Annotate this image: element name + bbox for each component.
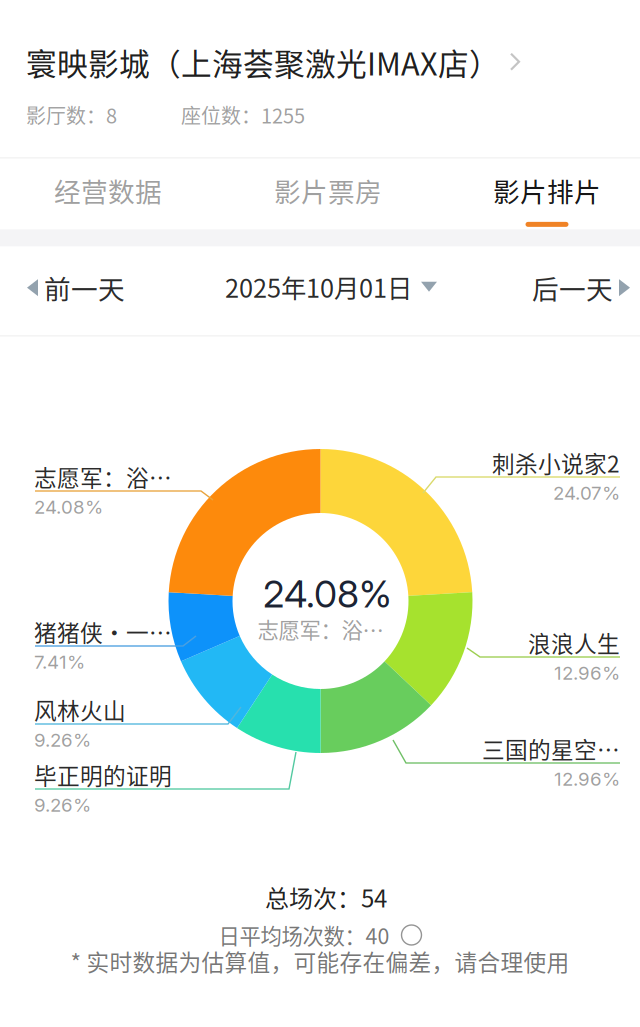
- staticText: 经营数据: [54, 171, 162, 210]
- button[interactable]: 前一天: [13, 246, 139, 329]
- staticText: 2025年10月01日: [225, 268, 412, 305]
- staticText: 志愿军：浴…: [257, 614, 383, 644]
- staticText: 12.96%: [554, 768, 620, 790]
- staticText: 9.26%: [34, 794, 91, 816]
- staticText: 毕正明的证明: [34, 758, 172, 791]
- staticText: 猪猪侠·一…: [34, 615, 172, 648]
- button[interactable]: 影片排片: [467, 159, 627, 239]
- staticText: 24.08%: [34, 496, 103, 518]
- staticText: 寰映影城（上海荟聚激光IMAX店）: [26, 40, 500, 84]
- staticText: 9.26%: [34, 729, 91, 751]
- button[interactable]: 影片票房: [248, 159, 408, 239]
- staticText: 志愿军：浴…: [34, 460, 172, 493]
- staticText: 风林火山: [34, 693, 126, 726]
- staticText: 刺杀小说家2: [492, 446, 620, 479]
- staticText: 三国的星空…: [482, 732, 620, 765]
- staticText: 24.07%: [553, 482, 620, 504]
- staticText: 座位数：1255: [181, 100, 305, 129]
- staticText: 前一天: [44, 268, 125, 307]
- button[interactable]: 2025年10月01日: [211, 246, 451, 327]
- staticText: 影厅数：8: [26, 100, 117, 129]
- button[interactable]: 经营数据: [28, 159, 188, 239]
- staticText: 总场次：54: [265, 880, 387, 914]
- button[interactable]: 寰映影城（上海荟聚激光IMAX店）: [0, 0, 521, 84]
- staticText: * 实时数据为估算值，可能存在偏差，请合理使用: [70, 945, 569, 977]
- staticText: 浪浪人生: [528, 626, 620, 659]
- staticText: 后一天: [532, 268, 613, 307]
- button[interactable]: 后一天: [518, 246, 640, 329]
- staticText: 24.08%: [263, 571, 392, 617]
- staticText: 影片排片: [493, 171, 601, 210]
- staticText: 7.41%: [34, 651, 85, 673]
- staticText: 12.96%: [554, 662, 620, 684]
- staticText: 日平均场次数：40: [218, 920, 389, 950]
- staticText: 影片票房: [274, 171, 382, 210]
